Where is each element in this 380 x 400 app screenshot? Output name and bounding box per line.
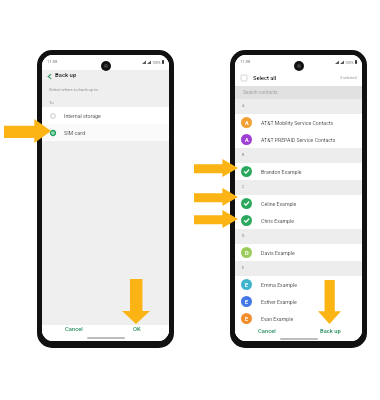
button[interactable]: Celine Example xyxy=(235,195,362,212)
button[interactable]: Select all xyxy=(235,70,362,86)
staticText: 11:08 xyxy=(240,59,251,64)
staticText: C xyxy=(242,184,245,188)
button[interactable]: SIM card xyxy=(42,124,169,141)
staticText: 11:08 xyxy=(47,59,58,64)
button[interactable]: Cancel xyxy=(42,325,105,334)
button[interactable]: A xyxy=(235,114,362,131)
staticText: SIM card xyxy=(64,130,85,136)
staticText: D xyxy=(242,233,245,237)
staticText: Esther Example xyxy=(261,299,297,305)
staticText: D xyxy=(245,250,249,256)
staticText: Davis Example xyxy=(261,250,295,256)
staticText: A xyxy=(242,103,245,107)
staticText: Search contacts xyxy=(243,90,278,96)
staticText: Evan Example xyxy=(261,316,294,322)
staticText: AT&T Mobility Service Contacts xyxy=(261,120,334,126)
staticText: Select where to back up to. xyxy=(49,87,100,92)
staticText: OK xyxy=(133,326,141,333)
staticText: Emma Example xyxy=(261,282,297,288)
staticText: To xyxy=(49,100,54,105)
button[interactable]: E xyxy=(235,310,362,327)
staticText: E xyxy=(245,299,249,305)
staticText: B xyxy=(242,152,245,156)
staticText: E xyxy=(245,316,249,322)
staticText: 3 selected xyxy=(340,76,357,80)
button[interactable]: Internal storage xyxy=(42,107,169,124)
staticText: Internal storage xyxy=(64,113,101,119)
button[interactable]: Cancel xyxy=(235,327,298,336)
button[interactable]: Navigate up xyxy=(44,71,54,81)
button[interactable]: E xyxy=(235,276,362,293)
button[interactable]: Brandon Example xyxy=(235,163,362,180)
staticText: Celine Example xyxy=(261,201,297,207)
button[interactable]: D xyxy=(235,244,362,261)
staticText: AT&T PREPAID Service Contacts xyxy=(261,137,336,143)
button[interactable]: Chris Example xyxy=(235,212,362,229)
button[interactable]: A xyxy=(235,131,362,148)
staticText: Brandon Example xyxy=(261,169,302,175)
button[interactable]: OK xyxy=(105,325,169,334)
staticText: A xyxy=(245,120,249,126)
staticText: E xyxy=(245,282,249,288)
staticText: Cancel xyxy=(258,328,276,335)
staticText: Chris Example xyxy=(261,218,295,224)
button[interactable]: Search contacts xyxy=(235,86,362,99)
staticText: 100% xyxy=(345,61,354,65)
staticText: Back up xyxy=(320,328,341,335)
staticText: Select all xyxy=(253,75,277,82)
staticText: A xyxy=(245,137,249,143)
staticText: 100% xyxy=(152,61,161,65)
staticText: E xyxy=(242,265,245,269)
button[interactable]: Back up xyxy=(298,327,362,336)
button[interactable]: E xyxy=(235,293,362,310)
staticText: Cancel xyxy=(65,326,83,333)
staticText: Back up xyxy=(55,72,77,79)
